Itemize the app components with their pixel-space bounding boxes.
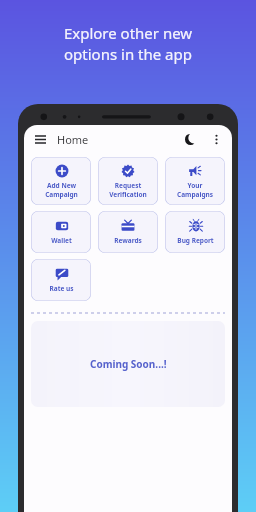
button[interactable]: Menu	[32, 131, 48, 147]
button[interactable]: Dark mode	[182, 131, 198, 147]
staticText: Coming Soon...!	[90, 357, 167, 371]
button[interactable]: More options	[208, 131, 224, 147]
button[interactable]: Wallet	[31, 211, 91, 253]
staticText: Rewards	[114, 236, 142, 245]
staticText: Rate us	[49, 284, 74, 293]
button[interactable]: Add New Campaign	[31, 157, 91, 205]
button[interactable]: Bug Report	[165, 211, 225, 253]
staticText: Wallet	[51, 236, 72, 245]
staticText: Bug Report	[177, 236, 214, 245]
button[interactable]: Request Verification	[98, 157, 158, 205]
button[interactable]: Coming Soon...!	[31, 321, 225, 407]
staticText: Your Campaigns	[177, 181, 213, 199]
button[interactable]: Your Campaigns	[165, 157, 225, 205]
button[interactable]: Rewards	[98, 211, 158, 253]
staticText: Request Verification	[109, 181, 147, 199]
staticText: Add New Campaign	[45, 181, 78, 199]
staticText: Home	[57, 132, 89, 147]
button[interactable]: Rate us	[31, 259, 91, 301]
staticText: Explore other new options in the app	[0, 23, 256, 65]
